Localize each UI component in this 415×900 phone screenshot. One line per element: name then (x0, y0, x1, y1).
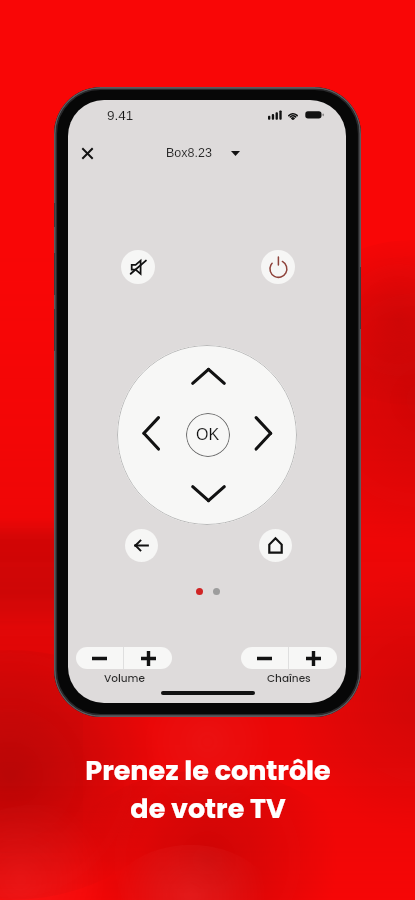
button[interactable]: Box8.23 (166, 141, 240, 165)
staticText: Chaînes (267, 671, 311, 686)
button[interactable]: Chaînes down (241, 647, 288, 669)
staticText: Prenez le contrôle (85, 752, 331, 790)
staticText: de votre TV (130, 790, 286, 828)
staticText: OK (196, 426, 220, 444)
button[interactable]: Chaînes up (289, 647, 337, 669)
button[interactable]: Power (261, 250, 295, 284)
button[interactable]: Close (70, 136, 104, 170)
button[interactable]: Mute (121, 250, 155, 284)
button[interactable]: Back (125, 529, 158, 562)
button[interactable]: Home (259, 529, 292, 562)
button[interactable]: OK (186, 413, 230, 457)
staticText: 9.41 (107, 108, 134, 123)
button[interactable]: Volume up (124, 647, 172, 669)
staticText: Box8.23 (166, 146, 212, 160)
staticText: Volume (104, 671, 145, 686)
button[interactable]: Volume down (76, 647, 123, 669)
